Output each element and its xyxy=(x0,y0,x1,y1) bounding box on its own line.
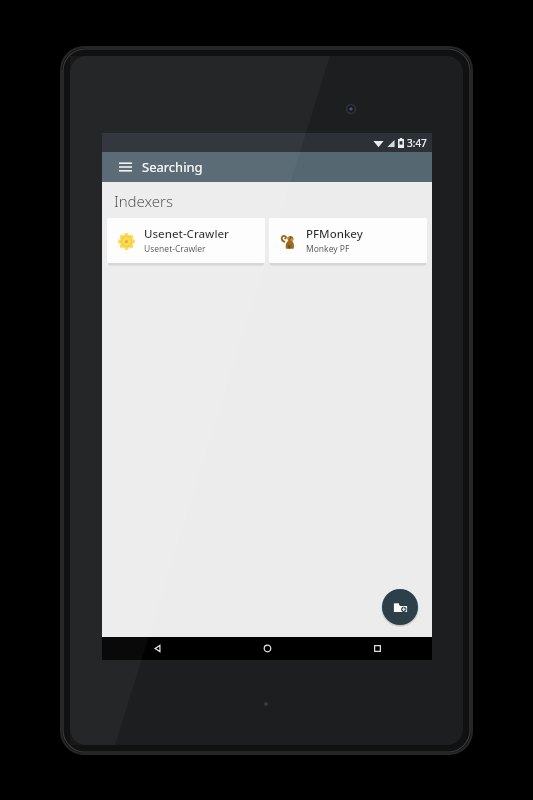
staticText: 3:47 xyxy=(407,136,427,150)
button[interactable]: Recent apps xyxy=(322,637,432,660)
button[interactable]: Home xyxy=(212,637,322,660)
staticText: Indexers xyxy=(114,191,174,211)
button[interactable]: Add indexer xyxy=(382,589,418,625)
staticText: Usenet-Crawler xyxy=(144,243,206,255)
staticText: Monkey PF xyxy=(306,243,350,255)
button[interactable]: PFMonkey xyxy=(269,218,427,263)
staticText: Searching xyxy=(142,158,203,176)
staticText: Usenet-Crawler xyxy=(144,226,229,242)
button[interactable]: Back xyxy=(102,637,212,660)
button[interactable]: Usenet-Crawler xyxy=(107,218,265,263)
button[interactable]: Open navigation drawer xyxy=(114,156,136,178)
staticText: PFMonkey xyxy=(306,226,363,242)
